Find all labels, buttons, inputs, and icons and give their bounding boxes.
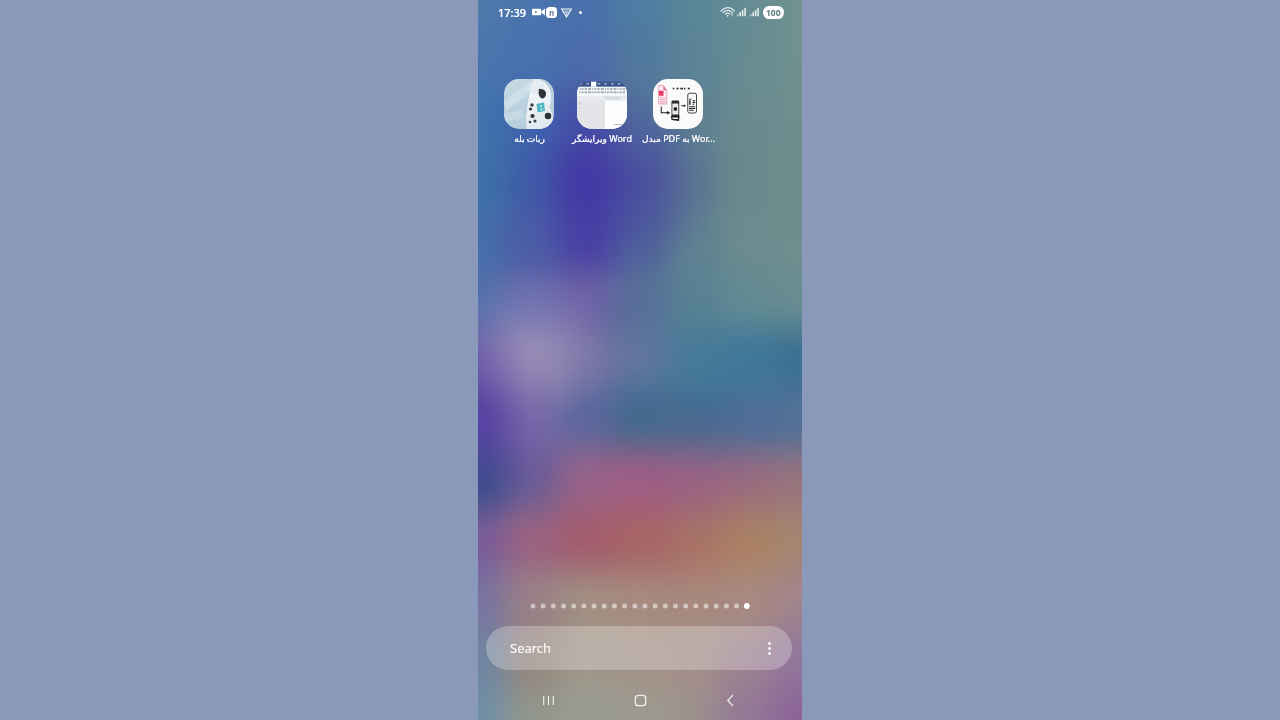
staticText: n [549, 7, 555, 18]
button[interactable]: مبدل PDF به Wor... [647, 77, 709, 145]
button[interactable]: ربات بله [498, 77, 560, 145]
staticText: Search [510, 639, 552, 657]
button[interactable]: Home [616, 680, 664, 720]
button[interactable]: ویرایشگر Word [571, 77, 633, 145]
button[interactable]: Back [706, 680, 754, 720]
staticText: ویرایشگر Word [572, 132, 632, 144]
staticText: ربات بله [514, 132, 545, 144]
staticText: 100 [766, 7, 781, 19]
button[interactable]: More options [762, 638, 776, 658]
button[interactable]: Recent apps [524, 680, 572, 720]
button[interactable]: Search [486, 626, 792, 670]
staticText: 17:39 [498, 5, 527, 20]
staticText: مبدل PDF به Wor... [642, 132, 715, 144]
